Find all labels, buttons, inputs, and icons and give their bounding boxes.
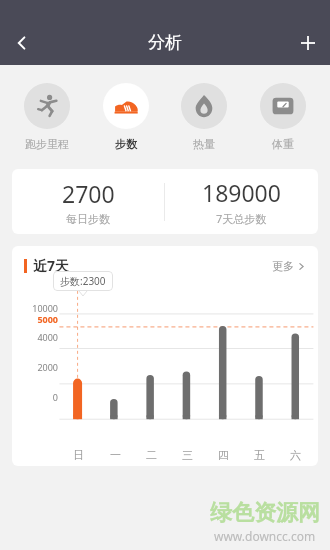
button[interactable]: Add xyxy=(286,21,330,65)
staticText: 四 xyxy=(218,448,229,462)
staticText: 步数 xyxy=(115,137,137,151)
staticText: 更多 xyxy=(272,259,294,273)
staticText: 分析 xyxy=(148,32,182,53)
staticText: 0 xyxy=(52,391,58,403)
staticText: 日 xyxy=(73,448,84,462)
staticText: 热量 xyxy=(193,137,215,151)
staticText: 2700 xyxy=(62,178,115,209)
staticText: 7天总步数 xyxy=(216,211,267,226)
staticText: 5000 xyxy=(37,313,58,325)
staticText: 五 xyxy=(254,448,265,462)
button[interactable]: 步数 xyxy=(93,83,159,151)
staticText: 近7天 xyxy=(33,256,70,275)
staticText: 步数:2300 xyxy=(60,274,106,288)
staticText: 六 xyxy=(290,448,301,462)
button[interactable]: 热量 xyxy=(171,83,237,151)
staticText: 二 xyxy=(146,448,157,462)
button[interactable]: 2700 xyxy=(12,178,164,226)
staticText: www.downcc.com xyxy=(214,528,316,544)
staticText: 4000 xyxy=(37,331,58,343)
staticText: 一 xyxy=(110,448,121,462)
staticText: 10000 xyxy=(32,302,58,314)
button[interactable]: 体重 xyxy=(250,83,316,151)
staticText: 跑步里程 xyxy=(25,137,69,151)
staticText: 189000 xyxy=(202,177,281,208)
button[interactable]: Back xyxy=(0,21,44,65)
staticText: 2000 xyxy=(37,361,58,373)
button[interactable]: 更多 xyxy=(272,259,306,273)
button[interactable]: 跑步里程 xyxy=(14,83,80,151)
staticText: 每日步数 xyxy=(66,212,110,226)
button[interactable]: 189000 xyxy=(165,177,318,226)
staticText: 体重 xyxy=(272,137,294,151)
staticText: 绿色资源网 xyxy=(210,499,320,527)
staticText: 三 xyxy=(182,448,193,462)
